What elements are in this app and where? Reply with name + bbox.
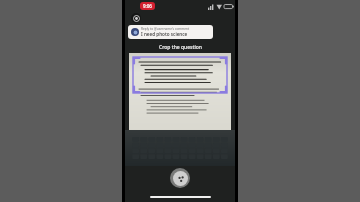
staticText: I need photo science bbox=[141, 31, 188, 37]
staticText: Reply to @username's comment bbox=[141, 27, 190, 31]
button[interactable]: Close bbox=[131, 13, 141, 23]
staticText: 9:06 bbox=[143, 3, 152, 9]
button[interactable]: Capture bbox=[170, 168, 190, 188]
button[interactable]: Reply to @username's comment bbox=[128, 25, 213, 39]
button[interactable]: Crop selection bbox=[133, 57, 227, 93]
staticText: Crop the question bbox=[159, 44, 202, 51]
